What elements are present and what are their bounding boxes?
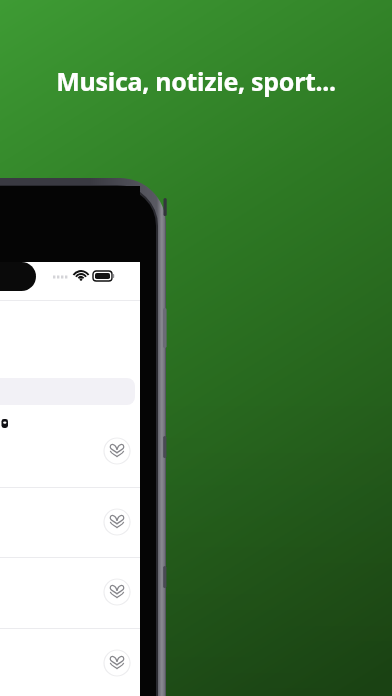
- staticText: Musica, notizie, sport...: [20, 64, 372, 98]
- button[interactable]: Preferiti 1: [104, 438, 130, 464]
- button[interactable]: Preferiti 2: [104, 509, 130, 535]
- button[interactable]: Preferiti 4: [104, 650, 130, 676]
- button[interactable]: Preferiti 3: [104, 579, 130, 605]
